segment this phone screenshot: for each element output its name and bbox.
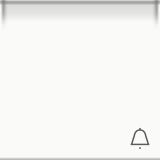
button[interactable]: Doorbell	[131, 129, 160, 160]
